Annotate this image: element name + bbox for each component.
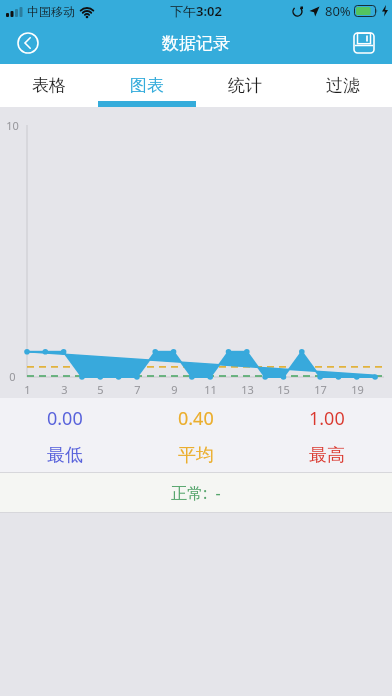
staticText: 1.00	[309, 406, 345, 431]
staticText: 15	[277, 382, 290, 397]
staticText: 10	[6, 118, 19, 133]
button[interactable]: 最低	[0, 438, 130, 472]
button[interactable]: 1.00	[261, 398, 392, 438]
staticText: 正常: -	[171, 482, 221, 504]
staticText: 下午3:02	[170, 2, 222, 20]
button[interactable]: 图表	[98, 64, 196, 107]
staticText: 13	[241, 382, 254, 397]
staticText: 80%	[325, 2, 351, 20]
staticText: 5	[97, 382, 104, 397]
staticText: 11	[204, 382, 217, 397]
staticText: 最低	[47, 444, 83, 467]
staticText: 图表	[130, 75, 164, 96]
button[interactable]: 0.40	[130, 398, 261, 438]
staticText: 0.40	[178, 406, 214, 431]
staticText: 平均	[178, 444, 214, 467]
button[interactable]: 最高	[261, 438, 392, 472]
staticText: 最高	[309, 444, 345, 467]
button[interactable]: 统计	[196, 64, 294, 107]
button[interactable]: 过滤	[294, 64, 392, 107]
staticText: 数据记录	[162, 33, 230, 54]
button[interactable]: 0.00	[0, 398, 130, 438]
button[interactable]: 正常: -	[0, 473, 392, 512]
button[interactable]	[344, 23, 384, 63]
staticText: 表格	[32, 75, 66, 96]
button[interactable]: 平均	[130, 438, 261, 472]
staticText: 统计	[228, 75, 262, 96]
staticText: 中国移动	[27, 4, 75, 19]
staticText: 17	[314, 382, 327, 397]
staticText: 过滤	[326, 75, 360, 96]
button[interactable]	[8, 23, 48, 63]
staticText: 19	[351, 382, 364, 397]
staticText: 7	[134, 382, 141, 397]
staticText: 0	[9, 369, 16, 384]
staticText: 9	[171, 382, 178, 397]
staticText: 0.00	[47, 406, 83, 431]
staticText: 3	[61, 382, 68, 397]
button[interactable]: 表格	[0, 64, 98, 107]
staticText: 1	[24, 382, 31, 397]
